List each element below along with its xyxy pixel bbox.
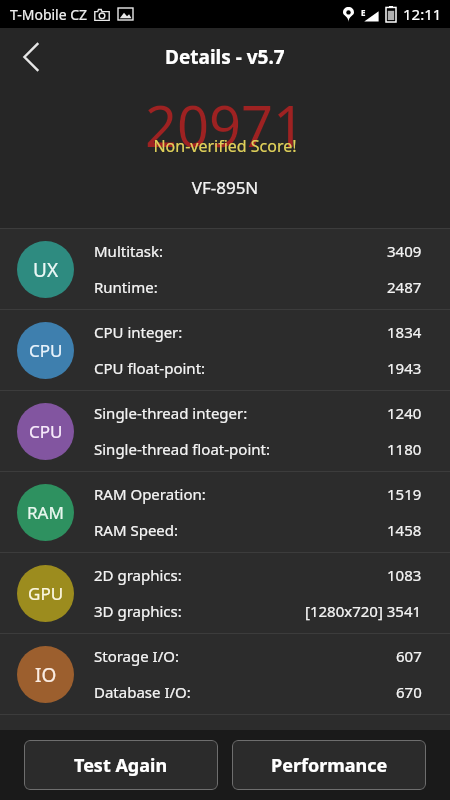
staticText: GPU	[28, 582, 64, 605]
staticText: Storage I/O:	[94, 646, 180, 666]
staticText: Details - v5.7	[165, 44, 285, 70]
staticText: Non-verified Score!	[0, 135, 450, 157]
staticText: 20971	[0, 87, 450, 163]
staticText: 1458	[387, 520, 422, 540]
staticText: CPU	[29, 420, 63, 443]
staticText: 670	[396, 682, 422, 702]
staticText: 12:11	[403, 4, 442, 24]
button[interactable]: IO	[0, 634, 450, 714]
staticText: 607	[396, 646, 422, 666]
button[interactable]: CPU	[0, 391, 450, 471]
staticText: CPU float-point:	[94, 358, 206, 378]
staticText: 1240	[387, 403, 422, 423]
staticText: T-Mobile CZ	[10, 5, 88, 24]
button[interactable]: Back	[8, 33, 56, 81]
staticText: Multitask:	[94, 241, 164, 261]
button[interactable]: Test Again	[24, 740, 218, 790]
staticText: 1943	[387, 358, 422, 378]
button[interactable]: RAM	[0, 472, 450, 552]
staticText: 1519	[387, 484, 422, 504]
staticText: CPU integer:	[94, 322, 183, 342]
staticText: Runtime:	[94, 277, 158, 297]
staticText: E	[361, 7, 366, 18]
staticText: CPU	[29, 339, 63, 362]
button[interactable]: UX	[0, 229, 450, 309]
button[interactable]: GPU	[0, 553, 450, 633]
button[interactable]: CPU	[0, 310, 450, 390]
staticText: 2487	[387, 277, 422, 297]
staticText: Single-thread integer:	[94, 403, 248, 423]
button[interactable]: Performance	[232, 740, 426, 790]
staticText: 1083	[387, 565, 422, 585]
staticText: Single-thread float-point:	[94, 439, 270, 459]
staticText: UX	[33, 257, 59, 283]
staticText: RAM Operation:	[94, 484, 206, 504]
staticText: 3409	[387, 241, 422, 261]
staticText: RAM	[27, 501, 64, 524]
staticText: Database I/O:	[94, 682, 191, 702]
staticText: RAM Speed:	[94, 520, 179, 540]
staticText: Performance	[271, 753, 388, 778]
staticText: 2D graphics:	[94, 565, 182, 585]
staticText: 1834	[387, 322, 422, 342]
staticText: [1280x720] 3541	[305, 601, 422, 621]
staticText: 1180	[387, 439, 422, 459]
staticText: VF-895N	[0, 176, 450, 199]
staticText: 3D graphics:	[94, 601, 182, 621]
staticText: Test Again	[74, 753, 168, 778]
staticText: IO	[35, 662, 57, 688]
